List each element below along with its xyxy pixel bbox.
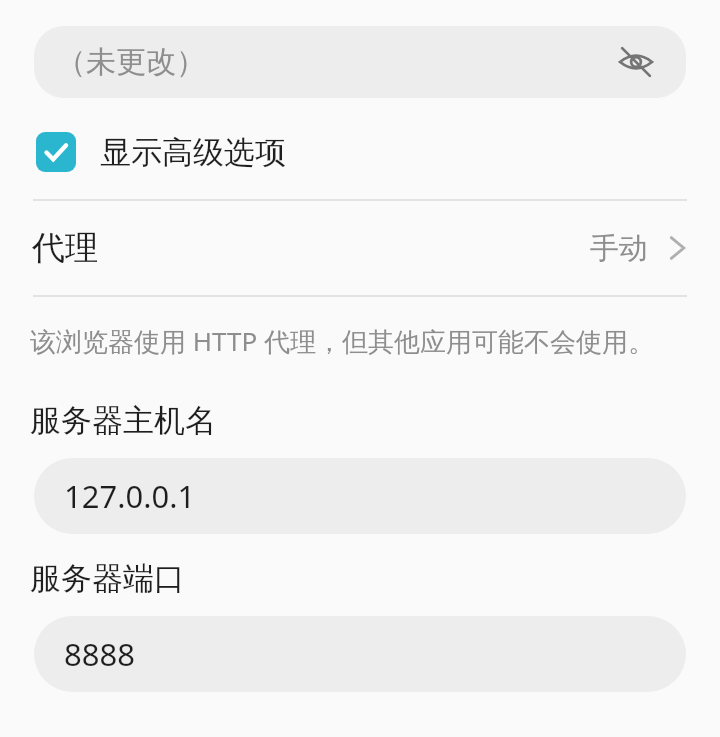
staticText: （未更改） <box>56 43 206 81</box>
staticText: 该浏览器使用 HTTP 代理，但其他应用可能不会使用。 <box>30 323 654 359</box>
button[interactable]: 127.0.0.1 <box>34 458 686 534</box>
staticText: 手动 <box>590 230 648 267</box>
staticText: 代理 <box>32 227 98 269</box>
staticText: 服务器端口 <box>30 559 185 598</box>
button[interactable]: 8888 <box>34 616 686 692</box>
button[interactable]: （未更改） <box>34 26 686 98</box>
staticText: 127.0.0.1 <box>64 475 196 517</box>
button[interactable]: Show password <box>614 40 658 84</box>
button[interactable]: 代理 <box>0 201 720 295</box>
staticText: 显示高级选项 <box>100 133 286 172</box>
staticText: 服务器主机名 <box>30 401 216 440</box>
button[interactable]: 显示高级选项 <box>0 130 720 174</box>
staticText: 8888 <box>64 633 135 675</box>
